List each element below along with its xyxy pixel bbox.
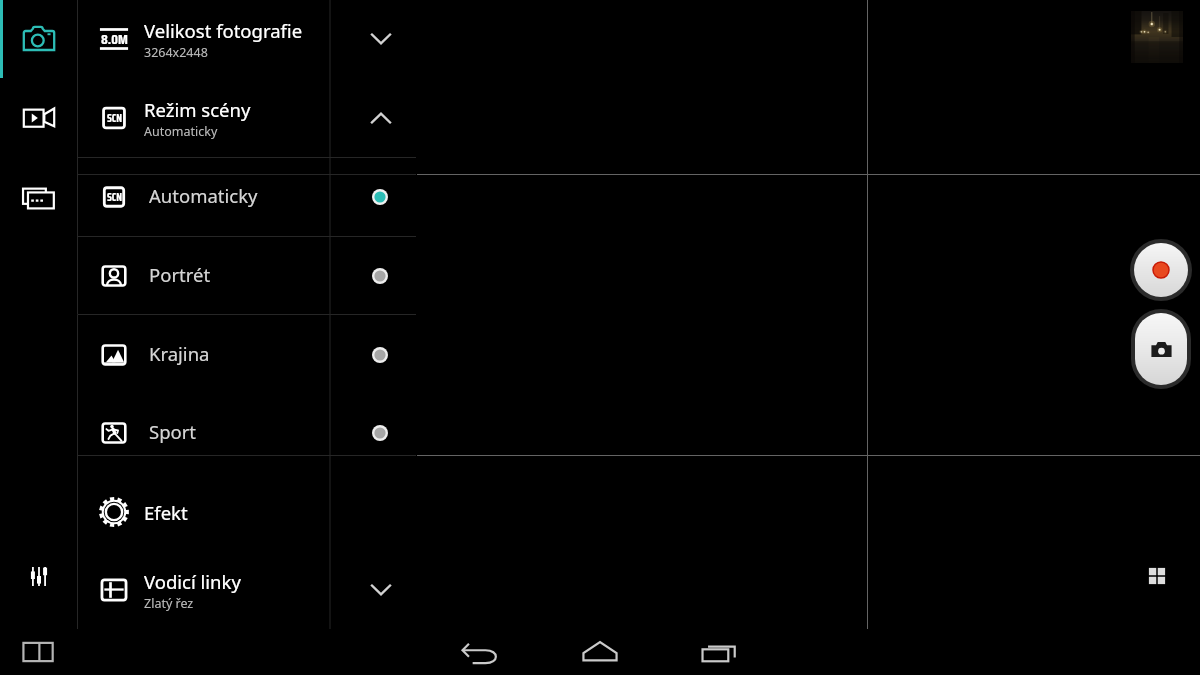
button[interactable]: Camera — [20, 20, 58, 58]
staticText: Krajina — [149, 341, 210, 366]
button[interactable]: Krajina — [78, 316, 416, 394]
button[interactable]: SCN — [78, 158, 416, 236]
staticText: Velikost fotografie — [144, 18, 303, 43]
button[interactable]: Panel — [20, 633, 58, 671]
staticText: 8.0M — [101, 28, 128, 50]
button[interactable]: Record video — [1130, 239, 1192, 301]
staticText: 3264x2448 — [144, 44, 208, 61]
button[interactable]: Recents — [697, 630, 743, 675]
button[interactable]: Adjust — [20, 557, 58, 595]
staticText: Automaticky — [144, 123, 218, 140]
button[interactable]: Grid — [1142, 561, 1172, 591]
button[interactable]: Back — [457, 630, 503, 675]
staticText: Efekt — [144, 500, 188, 525]
staticText: Sport — [149, 419, 197, 444]
button[interactable]: Take photo — [1131, 309, 1191, 389]
staticText: Režim scény — [144, 97, 251, 122]
staticText: Portrét — [149, 262, 211, 287]
staticText: Zlatý řez — [144, 595, 194, 612]
button[interactable]: Home — [577, 630, 623, 675]
button[interactable]: Video — [20, 99, 58, 137]
staticText: Automaticky — [149, 183, 258, 208]
button[interactable]: SCN — [78, 79, 416, 157]
button[interactable]: Portrét — [78, 237, 416, 315]
button[interactable]: 8.0M — [78, 0, 416, 78]
button[interactable]: Sport — [78, 394, 416, 472]
staticText: Vodicí linky — [144, 569, 241, 594]
staticText: SCN — [107, 189, 122, 206]
button[interactable]: Efekt — [78, 473, 416, 551]
button[interactable]: Modes — [20, 178, 58, 216]
staticText: SCN — [107, 110, 122, 127]
button[interactable]: Gallery — [1131, 11, 1183, 63]
button[interactable]: Vodicí linky — [78, 551, 416, 629]
